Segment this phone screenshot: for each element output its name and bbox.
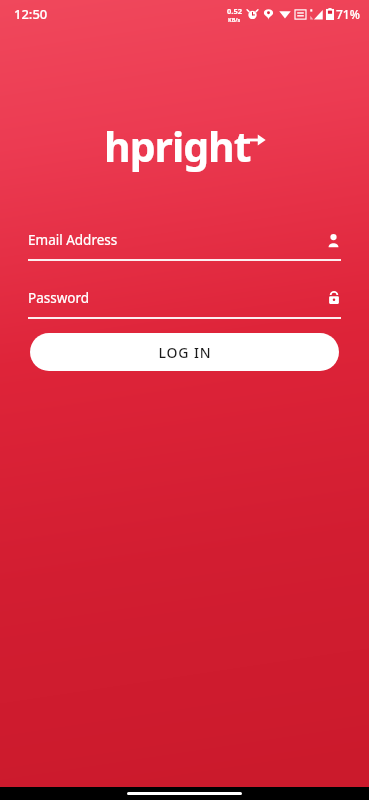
other: Email [326,233,341,248]
button[interactable]: Password [28,285,341,319]
staticText: 12:50 [14,5,48,23]
staticText: Password [28,289,90,307]
staticText: 0.52 [227,6,242,16]
staticText: hpright [104,118,251,174]
staticText: KB/s [228,16,241,23]
staticText: Email Address [28,231,118,249]
button[interactable]: Email Address [28,227,341,261]
staticText: LOG IN [158,343,212,362]
other: Password [327,291,341,305]
button[interactable]: LOG IN [30,333,339,371]
staticText: 71% [336,6,360,22]
